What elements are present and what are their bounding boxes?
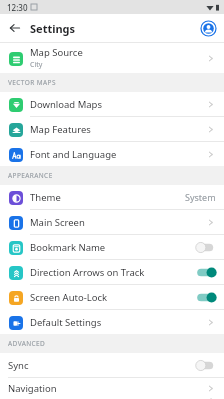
staticText: Main Screen [30,216,85,229]
button[interactable]: Screen Auto-Lock [0,285,224,309]
button[interactable]: Main Screen [0,210,224,234]
staticText: Settings [30,21,76,36]
staticText: Screen Auto-Lock [30,291,108,304]
staticText: Bookmark Name [30,241,106,254]
staticText: Map Features [30,123,91,136]
button[interactable] [196,292,216,303]
staticText: Direction Arrows on Track [30,266,145,279]
staticText: City [30,60,43,70]
button[interactable]: Account [198,18,218,38]
button[interactable]: Navigation [0,378,224,399]
staticText: System [185,191,216,203]
staticText: Navigation [8,382,57,395]
staticText: VECTOR MAPS [8,78,56,87]
button[interactable] [196,360,216,371]
button[interactable]: Default Settings [0,310,224,334]
staticText: Map Source [30,46,83,59]
button[interactable]: Bookmark Name [0,235,224,259]
staticText: APPEARANCE [8,171,53,180]
staticText: Download Maps [30,98,103,111]
staticText: Theme [30,191,61,204]
button[interactable]: Download Maps [0,92,224,116]
staticText: Sync [8,359,29,372]
staticText: Font and Language [30,148,117,161]
button[interactable] [196,242,216,253]
button[interactable]: Theme [0,185,224,209]
staticText: Default Settings [30,316,102,329]
button[interactable]: Direction Arrows on Track [0,260,224,284]
staticText: ADVANCED [8,339,46,348]
button[interactable]: Font and Language [0,142,224,166]
button[interactable]: Sync [0,353,224,377]
button[interactable] [196,267,216,278]
button[interactable]: Map Features [0,117,224,141]
button[interactable]: Back [4,17,26,39]
staticText: 12:30 [7,2,28,13]
button[interactable]: Map Source [0,43,224,73]
